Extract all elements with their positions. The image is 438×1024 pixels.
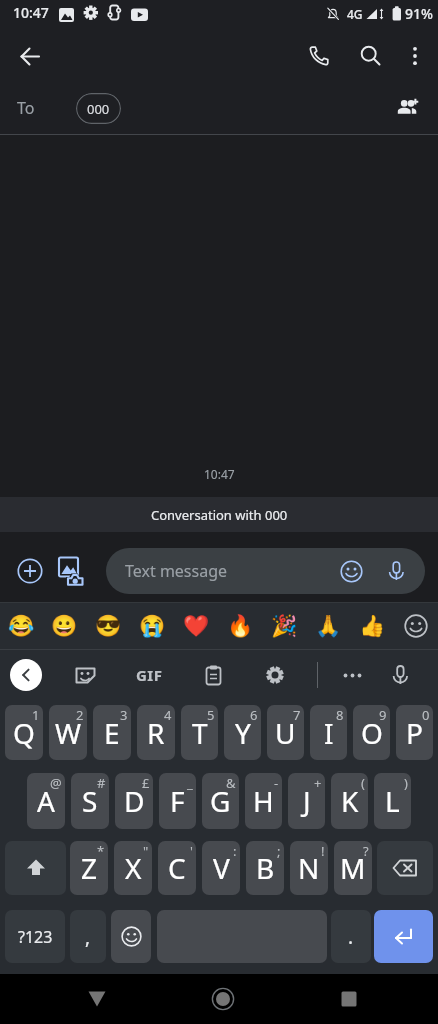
button[interactable]: GIF — [130, 656, 168, 694]
staticText: O — [361, 714, 383, 752]
staticText: 0 — [422, 706, 430, 724]
staticText: 😭 — [139, 614, 166, 639]
button[interactable]: Add people — [387, 86, 431, 130]
button[interactable]: Z — [70, 841, 108, 895]
button[interactable]: I — [310, 705, 347, 760]
staticText: 5 — [207, 706, 215, 724]
button[interactable]: Send photo — [51, 549, 95, 593]
button[interactable]: G — [202, 773, 239, 829]
staticText: . — [348, 924, 354, 950]
button[interactable]: 🔥 — [218, 603, 262, 649]
staticText: 😀 — [51, 614, 78, 639]
button[interactable]: E — [93, 705, 131, 760]
button[interactable]: Add attachment — [8, 549, 52, 593]
staticText: E — [104, 714, 120, 752]
button[interactable]: Emoji — [111, 910, 151, 963]
button[interactable]: D — [115, 773, 153, 829]
button[interactable]: Backspace — [377, 841, 433, 895]
button[interactable]: R — [137, 705, 175, 760]
button[interactable]: S — [71, 773, 109, 829]
button[interactable]: F — [159, 773, 196, 829]
button[interactable]: P — [396, 705, 433, 760]
button[interactable]: ❤️ — [174, 603, 218, 649]
button[interactable]: 🎉 — [262, 603, 306, 649]
button[interactable]: Stickers — [66, 656, 104, 694]
staticText: Text message — [125, 560, 228, 582]
button[interactable]: B — [246, 841, 284, 895]
button[interactable]: T — [181, 705, 218, 760]
button[interactable]: N — [290, 841, 328, 895]
button[interactable]: 😎 — [86, 603, 130, 649]
button[interactable]: V — [202, 841, 240, 895]
staticText: C — [168, 849, 186, 887]
button[interactable]: H — [245, 773, 282, 829]
button[interactable]: 👍 — [350, 603, 394, 649]
button[interactable]: L — [374, 773, 411, 829]
button[interactable]: M — [334, 841, 372, 895]
staticText: V — [213, 849, 230, 887]
staticText: K — [341, 782, 359, 820]
button[interactable]: 😭 — [130, 603, 174, 649]
button[interactable]: Text message — [106, 548, 425, 594]
staticText: ) — [404, 774, 408, 792]
staticText: 7 — [293, 706, 301, 724]
staticText: A — [37, 782, 55, 820]
staticText: : — [233, 842, 237, 860]
staticText: B — [256, 849, 275, 887]
staticText: 91% — [405, 4, 433, 23]
staticText: ' — [190, 842, 193, 860]
button[interactable]: ?123 — [5, 910, 65, 963]
button[interactable]: 000 — [76, 93, 121, 124]
button[interactable]: Call — [298, 34, 342, 78]
staticText: ; — [277, 842, 281, 860]
button[interactable]: More — [333, 656, 371, 694]
staticText: 000 — [87, 100, 110, 118]
button[interactable]: Back — [75, 977, 119, 1021]
staticText: 👍 — [359, 614, 386, 639]
button[interactable]: O — [353, 705, 390, 760]
button[interactable]: A — [27, 773, 65, 829]
staticText: ❤️ — [183, 614, 210, 639]
staticText: ( — [361, 774, 365, 792]
button[interactable]: K — [331, 773, 368, 829]
button[interactable]: Back — [8, 34, 52, 78]
button[interactable]: Shift — [5, 841, 66, 895]
button[interactable]: Home — [201, 977, 245, 1021]
button[interactable]: Voice input — [381, 656, 419, 694]
button[interactable]: Q — [5, 705, 43, 760]
button[interactable]: X — [114, 841, 152, 895]
button[interactable]: Y — [224, 705, 261, 760]
staticText: ! — [321, 842, 325, 860]
button[interactable]: Search — [349, 34, 393, 78]
staticText: M — [340, 849, 366, 887]
button[interactable]: . — [331, 910, 371, 963]
staticText: - — [274, 774, 279, 792]
staticText: + — [314, 774, 322, 792]
button[interactable]: Recents — [327, 977, 371, 1021]
staticText: , — [85, 924, 91, 950]
staticText: ?123 — [18, 926, 53, 948]
button[interactable]: Emoji keyboard — [394, 603, 438, 649]
other: Voice — [384, 559, 408, 583]
button[interactable]: C — [158, 841, 196, 895]
staticText: & — [226, 774, 236, 792]
button[interactable]: Back — [10, 659, 42, 691]
button[interactable]: Clipboard — [194, 656, 232, 694]
button[interactable]: J — [288, 773, 325, 829]
button[interactable]: U — [267, 705, 304, 760]
staticText: To — [17, 97, 35, 119]
button[interactable]: , — [70, 910, 106, 963]
button[interactable]: 😂 — [0, 603, 43, 649]
button[interactable]: Settings — [256, 656, 294, 694]
button[interactable]: Enter — [374, 910, 433, 963]
button[interactable]: More options — [393, 34, 437, 78]
staticText: X — [125, 849, 142, 887]
button[interactable]: W — [49, 705, 87, 760]
staticText: 4G — [347, 6, 363, 22]
staticText: 9 — [379, 706, 387, 724]
button[interactable]: 😀 — [43, 603, 86, 649]
staticText: G — [210, 782, 231, 820]
staticText: R — [147, 714, 165, 752]
button[interactable]: 🙏 — [306, 603, 350, 649]
